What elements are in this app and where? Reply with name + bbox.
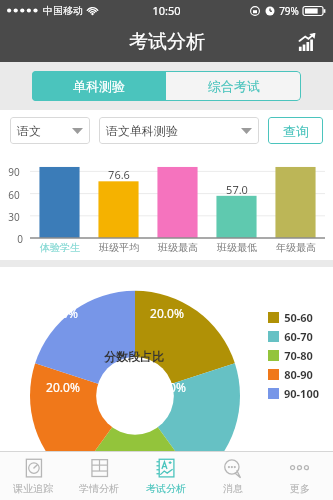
button[interactable]: Analytics report <box>292 27 322 57</box>
staticText: 班级平均 <box>99 241 139 254</box>
button[interactable]: 消息 <box>199 452 266 500</box>
staticText: 班级最低 <box>217 241 257 254</box>
staticText: 20.0% <box>44 305 78 321</box>
staticText: 单科测验 <box>73 78 125 94</box>
staticText: 57.0 <box>226 182 248 197</box>
staticText: 中国移动 <box>43 4 83 17</box>
staticText: 体验学生 <box>40 241 80 254</box>
button[interactable]: 查询 <box>268 117 323 144</box>
staticText: 60-70 <box>284 329 313 344</box>
button[interactable]: 单科测验 <box>32 71 166 101</box>
button[interactable]: 语文 <box>10 117 90 144</box>
staticText: 查询 <box>283 123 309 139</box>
button[interactable]: 综合考试 <box>166 71 301 101</box>
button[interactable]: 语文单科测验 <box>99 117 259 144</box>
staticText: 20.0% <box>152 379 186 395</box>
staticText: 70-80 <box>284 348 313 363</box>
button[interactable]: 90-100 <box>268 386 319 401</box>
staticText: 考试分析 <box>146 482 186 495</box>
staticText: 79% <box>279 4 299 18</box>
button[interactable]: 学情分析 <box>66 452 132 500</box>
staticText: 年级最高 <box>276 241 316 254</box>
staticText: 90 <box>8 165 20 179</box>
staticText: 班级最高 <box>158 241 198 254</box>
button[interactable]: 70-80 <box>268 348 313 363</box>
staticText: 语文 <box>17 123 41 138</box>
staticText: 0 <box>17 232 23 246</box>
staticText: 综合考试 <box>208 78 260 94</box>
staticText: 50-60 <box>284 310 313 325</box>
button[interactable]: 班级最低 <box>207 241 266 254</box>
staticText: 76.6 <box>108 167 130 182</box>
button[interactable]: 80-90 <box>268 367 313 382</box>
staticText: 考试分析 <box>129 30 205 54</box>
staticText: 30 <box>8 210 20 224</box>
button[interactable]: 班级最高 <box>148 241 207 254</box>
staticText: 分数段占比 <box>104 349 164 364</box>
staticText: 更多 <box>290 482 310 495</box>
staticText: 90-100 <box>284 386 319 401</box>
staticText: 课业追踪 <box>13 482 53 495</box>
staticText: 消息 <box>223 482 243 495</box>
button[interactable]: 年级最高 <box>266 241 325 254</box>
staticText: 10:50 <box>152 3 181 18</box>
staticText: 语文单科测验 <box>106 123 178 138</box>
staticText: 60 <box>8 188 20 202</box>
button[interactable]: 50-60 <box>268 310 313 325</box>
staticText: 80-90 <box>284 367 313 382</box>
staticText: 20.0% <box>46 379 80 395</box>
button[interactable]: 60-70 <box>268 329 313 344</box>
button[interactable]: 更多 <box>266 452 333 500</box>
staticText: 学情分析 <box>79 482 119 495</box>
staticText: 20.0% <box>150 305 184 321</box>
button[interactable]: 班级平均 <box>89 241 148 254</box>
button[interactable]: 体验学生 <box>30 241 89 254</box>
button[interactable]: 考试分析 <box>132 452 199 500</box>
button[interactable]: 课业追踪 <box>0 452 66 500</box>
